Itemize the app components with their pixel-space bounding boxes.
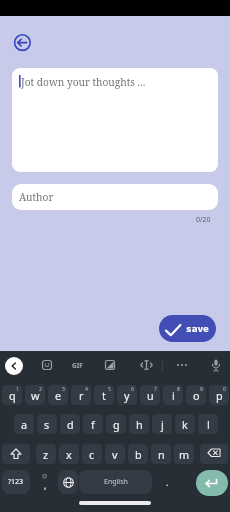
staticText: b	[135, 447, 142, 462]
button[interactable]: Author	[12, 184, 218, 210]
button[interactable]: c	[82, 444, 102, 464]
staticText: e	[55, 388, 62, 403]
staticText: English	[104, 477, 128, 487]
staticText: a	[21, 417, 28, 432]
button[interactable]: i	[163, 385, 183, 405]
button[interactable]: English	[79, 470, 152, 494]
staticText: n	[158, 447, 165, 462]
staticText: 3	[62, 386, 65, 393]
button[interactable]: m	[174, 444, 194, 464]
button[interactable]: b	[128, 444, 148, 464]
staticText: x	[66, 447, 72, 462]
button[interactable]: s	[37, 414, 57, 434]
button[interactable]	[196, 470, 228, 496]
button[interactable]	[210, 358, 222, 372]
staticText: GIF	[72, 361, 83, 370]
staticText: ☺	[42, 473, 48, 479]
staticText: 0/20	[196, 215, 211, 225]
button[interactable]	[5, 357, 23, 375]
button[interactable]: g	[106, 414, 126, 434]
staticText: r	[79, 388, 84, 403]
staticText: 2	[39, 386, 42, 393]
button[interactable]: e	[48, 385, 68, 405]
staticText: 7	[154, 386, 157, 393]
staticText: h	[136, 417, 143, 432]
staticText: p	[216, 388, 223, 403]
button[interactable]	[104, 359, 116, 371]
staticText: d	[67, 417, 74, 432]
staticText: k	[182, 417, 188, 432]
staticText: u	[147, 388, 154, 403]
button[interactable]: k	[175, 414, 195, 434]
staticText: 8	[177, 386, 180, 393]
staticText: w	[31, 388, 40, 403]
button[interactable]: ☺	[34, 470, 55, 494]
button[interactable]: a	[14, 414, 34, 434]
staticText: o	[193, 388, 200, 403]
staticText: t	[102, 388, 106, 403]
button[interactable]: Jot down your thoughts ...	[12, 68, 218, 172]
button[interactable]: save	[159, 315, 216, 342]
staticText: .	[166, 476, 169, 488]
staticText: m	[179, 447, 190, 462]
button[interactable]	[41, 359, 53, 371]
button[interactable]: x	[59, 444, 79, 464]
button[interactable]: r	[71, 385, 91, 405]
staticText: ,	[44, 479, 47, 491]
button[interactable]: .	[157, 470, 178, 494]
staticText: ?123	[8, 477, 24, 487]
button[interactable]	[200, 444, 228, 464]
button[interactable]	[2, 444, 30, 464]
button[interactable]: u	[140, 385, 160, 405]
button[interactable]: l	[198, 414, 218, 434]
staticText: 4	[85, 386, 88, 393]
staticText: 0	[223, 386, 226, 393]
button[interactable]: v	[105, 444, 125, 464]
staticText: s	[44, 417, 50, 432]
button[interactable]: d	[60, 414, 80, 434]
staticText: z	[43, 447, 49, 462]
button[interactable]	[58, 470, 78, 494]
button[interactable]: y	[117, 385, 137, 405]
staticText: j	[161, 417, 164, 432]
button[interactable]: ?123	[2, 470, 30, 494]
staticText: Jot down your thoughts ...	[21, 75, 146, 89]
button[interactable]: q	[2, 385, 22, 405]
button[interactable]	[139, 359, 153, 371]
staticText: l	[207, 417, 210, 432]
staticText: 6	[131, 386, 134, 393]
button[interactable]: o	[186, 385, 206, 405]
button[interactable]	[175, 360, 189, 370]
button[interactable]: t	[94, 385, 114, 405]
staticText: Author	[19, 190, 54, 204]
button[interactable]: p	[209, 385, 229, 405]
staticText: f	[91, 417, 95, 432]
staticText: c	[89, 447, 95, 462]
button[interactable]: GIF	[69, 359, 86, 371]
staticText: q	[9, 388, 16, 403]
button[interactable]	[12, 32, 33, 53]
button[interactable]: h	[129, 414, 149, 434]
staticText: 5	[108, 386, 111, 393]
button[interactable]: n	[151, 444, 171, 464]
staticText: 1	[16, 386, 19, 393]
staticText: save	[186, 322, 209, 335]
staticText: i	[172, 388, 175, 403]
staticText: 9	[200, 386, 203, 393]
staticText: v	[112, 447, 118, 462]
button[interactable]: j	[152, 414, 172, 434]
button[interactable]: w	[25, 385, 45, 405]
staticText: y	[124, 388, 130, 403]
button[interactable]: f	[83, 414, 103, 434]
button[interactable]: z	[36, 444, 56, 464]
staticText: g	[113, 417, 120, 432]
